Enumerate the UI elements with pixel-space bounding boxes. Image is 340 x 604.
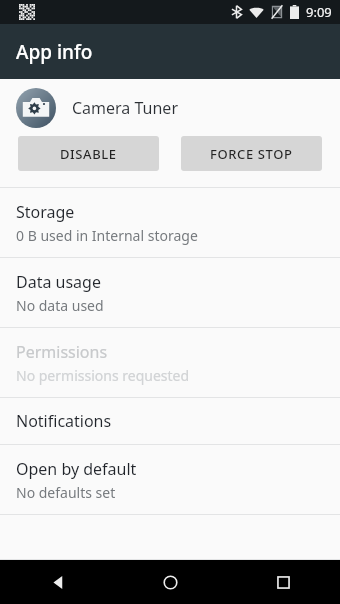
staticText: No defaults set [16, 483, 116, 502]
button[interactable]: Recent apps [227, 560, 340, 604]
button[interactable]: DISABLE [18, 136, 159, 171]
button[interactable]: Open by default [0, 445, 340, 514]
staticText: Open by default [16, 458, 137, 480]
staticText: Storage [16, 201, 75, 223]
staticText: 0 B used in Internal storage [16, 226, 198, 245]
staticText: Notifications [16, 410, 112, 432]
button[interactable]: Permissions [0, 328, 340, 397]
staticText: 9:09 [306, 3, 332, 21]
button[interactable]: Storage [0, 188, 340, 257]
staticText: FORCE STOP [210, 145, 293, 163]
button[interactable]: Back [0, 560, 114, 604]
staticText: Data usage [16, 271, 101, 293]
staticText: Camera Tuner [72, 97, 179, 119]
staticText: DISABLE [60, 145, 117, 163]
button[interactable]: FORCE STOP [181, 136, 322, 171]
staticText: App info [16, 39, 93, 65]
staticText: Permissions [16, 341, 108, 363]
button[interactable]: Camera Tuner [0, 79, 340, 136]
staticText: No data used [16, 296, 104, 315]
staticText: No permissions requested [16, 366, 190, 385]
button[interactable]: Home [114, 560, 227, 604]
button[interactable]: Data usage [0, 258, 340, 327]
button[interactable]: Notifications [0, 398, 340, 444]
